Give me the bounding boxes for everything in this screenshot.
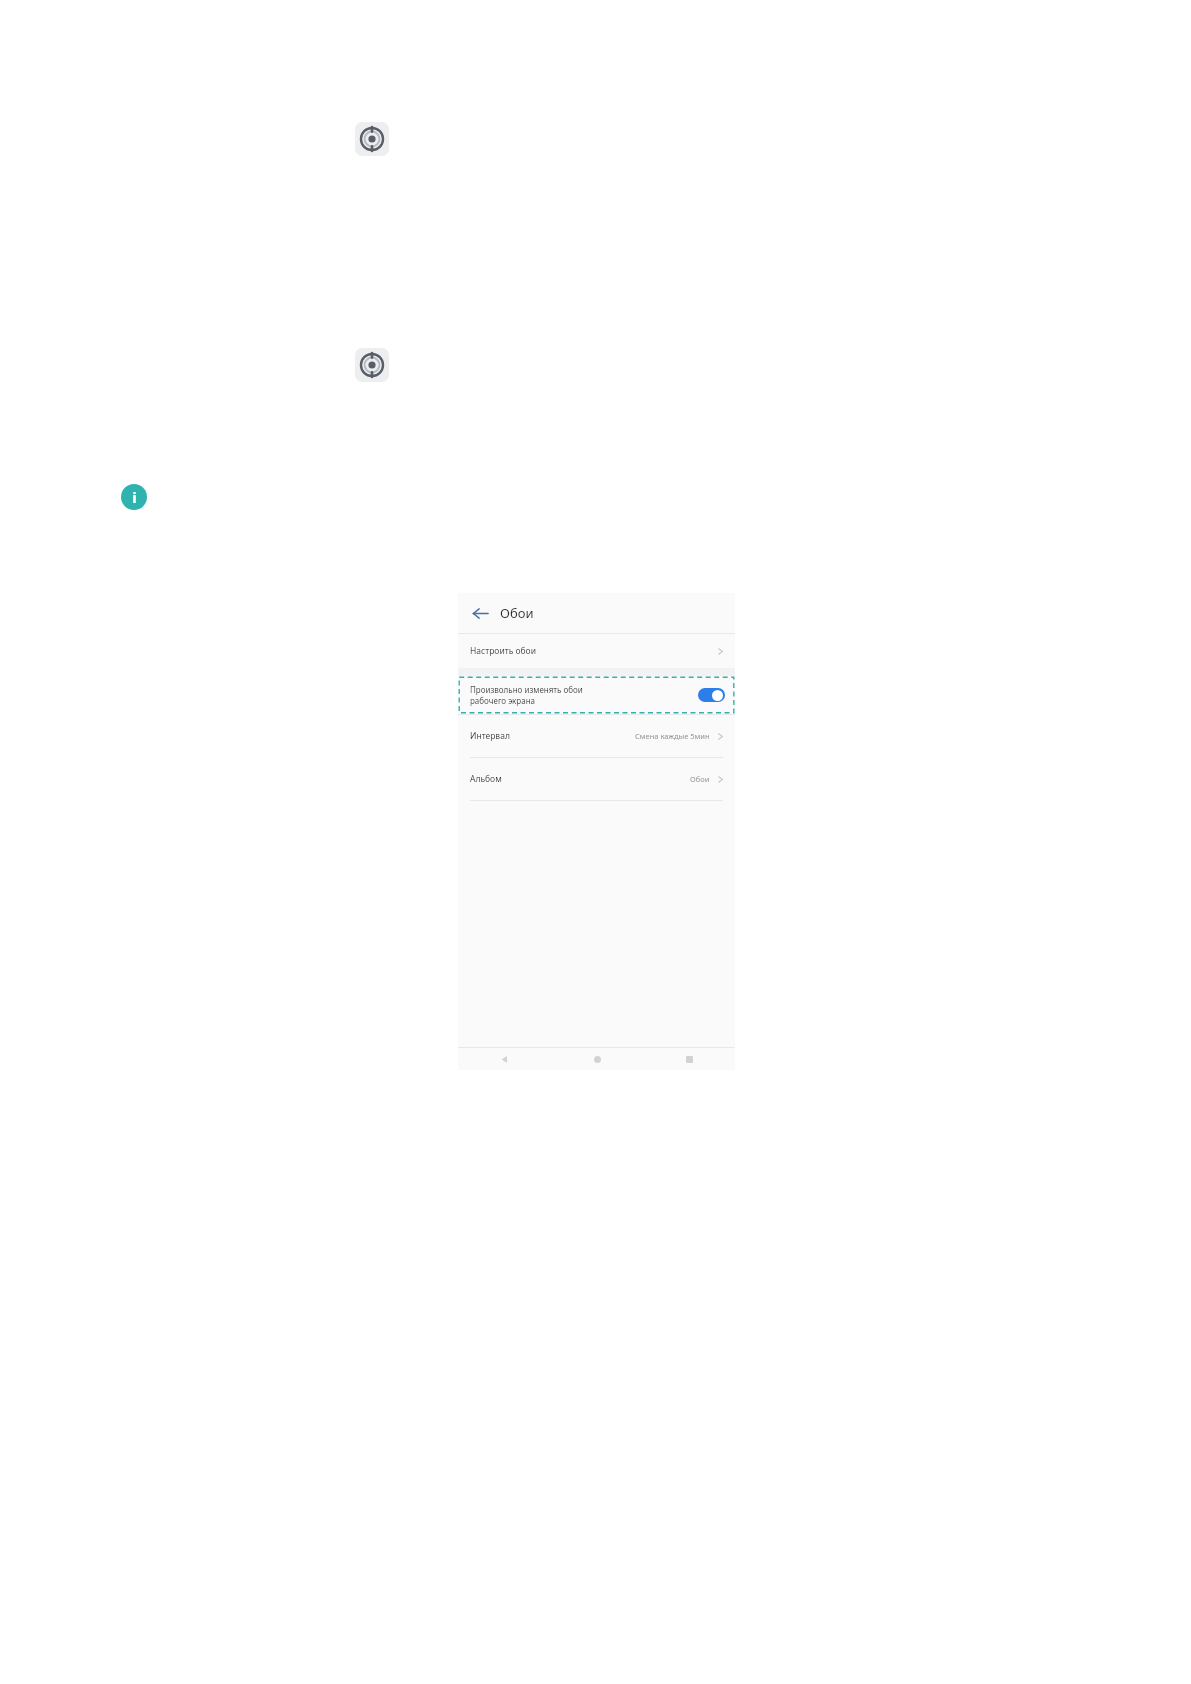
staticText: Произвольно изменять обои xyxy=(470,684,583,695)
staticText: Альбом xyxy=(470,773,502,785)
button[interactable]: Back xyxy=(466,599,494,627)
staticText: Настроить обои xyxy=(470,645,536,657)
button[interactable]: Settings xyxy=(355,122,389,156)
button[interactable]: Настроить обои xyxy=(458,634,735,668)
button[interactable]: Recent apps xyxy=(643,1056,735,1063)
other: Randomly change wallpaper toggle xyxy=(698,688,725,702)
staticText: i xyxy=(132,487,137,507)
button[interactable]: Интервал xyxy=(458,715,735,757)
staticText: рабочего экрана xyxy=(470,695,536,706)
other: Information xyxy=(121,484,147,510)
button[interactable]: Произвольно изменять обои xyxy=(458,676,735,714)
staticText: Смена каждые 5мин xyxy=(635,731,710,741)
button[interactable]: Home xyxy=(551,1056,643,1063)
staticText: Интервал xyxy=(470,730,510,742)
staticText: Обои xyxy=(500,604,534,622)
button[interactable]: Back xyxy=(458,1056,551,1063)
button[interactable]: Альбом xyxy=(458,758,735,800)
staticText: Обои xyxy=(690,774,710,784)
button[interactable]: Settings xyxy=(355,348,389,382)
